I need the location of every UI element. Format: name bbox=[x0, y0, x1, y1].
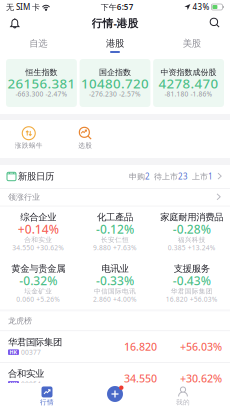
staticText: 龙虎榜 bbox=[8, 317, 32, 325]
staticText: 华君国际集团 bbox=[171, 288, 213, 295]
staticText: 美股 bbox=[183, 39, 201, 48]
staticText: +30.62% bbox=[180, 373, 222, 384]
staticText: 23 bbox=[178, 172, 188, 181]
button[interactable]: 电讯业 bbox=[77, 264, 153, 303]
staticText: 国企指数 bbox=[99, 68, 131, 76]
staticText: 中信国际电讯 bbox=[94, 288, 136, 295]
staticText: 43% bbox=[192, 3, 209, 11]
staticText: -0.33% bbox=[96, 274, 134, 287]
staticText: +56.03% bbox=[180, 341, 222, 352]
staticText: 待上市 bbox=[154, 173, 178, 180]
staticText: HK bbox=[9, 381, 17, 387]
staticText: 支援服务 bbox=[174, 264, 210, 273]
staticText: 港股 bbox=[106, 39, 124, 48]
staticText: 上市 bbox=[192, 173, 208, 180]
staticText: 福兴科技 bbox=[178, 236, 206, 243]
staticText: 领涨行业 bbox=[8, 193, 40, 201]
staticText: -0.28% bbox=[173, 223, 211, 235]
staticText: 合和实业 bbox=[8, 369, 44, 378]
button[interactable]: 合和实业 bbox=[0, 363, 230, 394]
button[interactable]: 黄金与贵金属 bbox=[0, 264, 77, 303]
staticText: 下午6:57 bbox=[101, 3, 134, 11]
staticText: 涨跌蜗牛 bbox=[15, 142, 43, 149]
staticText: 无 SIM 卡 bbox=[6, 3, 40, 11]
staticText: 选股 bbox=[78, 142, 92, 149]
staticText: 34.550 bbox=[124, 373, 157, 384]
staticText: 16.820 bbox=[124, 341, 157, 352]
staticText: 长安仁恒 bbox=[101, 236, 129, 243]
button[interactable]: 华君国际集团 bbox=[0, 331, 230, 362]
staticText: 中资指数成份股 bbox=[161, 68, 217, 76]
staticText: HK bbox=[9, 349, 17, 355]
button[interactable]: 选股 bbox=[57, 126, 113, 149]
staticText: 26156.381 bbox=[7, 76, 75, 90]
staticText: 9.880 +7.63% bbox=[93, 244, 137, 251]
staticText: +0.14% bbox=[18, 223, 59, 235]
staticText: 16.820 +56.03% bbox=[166, 296, 218, 303]
staticText: -276.230 -2.57% bbox=[89, 90, 141, 98]
button[interactable]: 综合企业 bbox=[0, 213, 77, 251]
staticText: 华君国际集团 bbox=[8, 337, 62, 347]
staticText: -81.180 -1.86% bbox=[165, 90, 213, 98]
staticText: -663.300 -2.47% bbox=[15, 90, 67, 98]
button[interactable]: 恒生指数 bbox=[6, 59, 77, 107]
staticText: 恒生指数 bbox=[25, 68, 57, 76]
staticText: 电讯业 bbox=[101, 264, 128, 273]
staticText: 坛金矿业 bbox=[24, 288, 52, 295]
staticText: 新股日历 bbox=[18, 172, 54, 181]
staticText: 00054 bbox=[21, 380, 41, 387]
button[interactable]: 搜索 bbox=[207, 16, 223, 30]
button[interactable]: 中资指数成份股 bbox=[153, 59, 224, 107]
staticText: 4278.470 bbox=[159, 76, 219, 90]
staticText: 34.550 +30.62% bbox=[12, 244, 64, 251]
staticText: 0.385 +13.24% bbox=[168, 244, 216, 251]
staticText: -0.12% bbox=[96, 223, 134, 235]
button[interactable]: 通知 bbox=[7, 16, 23, 30]
staticText: 家庭耐用消费品 bbox=[160, 213, 223, 222]
staticText: 00377 bbox=[21, 349, 41, 356]
staticText: 行情 bbox=[40, 399, 54, 406]
staticText: 申购 bbox=[129, 173, 145, 180]
staticText: 2 bbox=[145, 172, 150, 181]
staticText: 行情-港股 bbox=[91, 17, 138, 29]
button[interactable]: 支援服务 bbox=[153, 264, 230, 303]
button[interactable]: 国企指数 bbox=[80, 59, 150, 107]
button[interactable]: 涨跌蜗牛 bbox=[0, 126, 57, 149]
button[interactable]: 领涨行业 bbox=[0, 189, 230, 206]
staticText: 10480.720 bbox=[81, 76, 149, 90]
button[interactable]: 美股 bbox=[153, 32, 230, 56]
button[interactable]: 港股 bbox=[77, 32, 153, 56]
staticText: 我的 bbox=[176, 399, 190, 406]
button[interactable]: 化工產品 bbox=[77, 213, 153, 251]
staticText: 黄金与贵金属 bbox=[11, 264, 65, 273]
button[interactable]: 家庭耐用消费品 bbox=[153, 213, 230, 251]
staticText: -0.32% bbox=[19, 274, 57, 287]
staticText: 自选 bbox=[29, 39, 47, 48]
button[interactable]: 新股日历 bbox=[0, 165, 230, 188]
button[interactable]: 添加 bbox=[107, 386, 123, 402]
staticText: 0.060 +5.26% bbox=[16, 296, 60, 303]
button[interactable]: 行情 bbox=[32, 386, 62, 406]
staticText: 1 bbox=[208, 172, 213, 181]
staticText: 2.860 +4.00% bbox=[93, 296, 137, 303]
staticText: 化工產品 bbox=[97, 213, 133, 222]
staticText: 综合企业 bbox=[20, 213, 56, 222]
button[interactable]: 自选 bbox=[0, 32, 77, 56]
staticText: 合和实业 bbox=[24, 236, 52, 243]
button[interactable]: 我的 bbox=[168, 386, 198, 406]
staticText: -0.43% bbox=[173, 274, 211, 287]
